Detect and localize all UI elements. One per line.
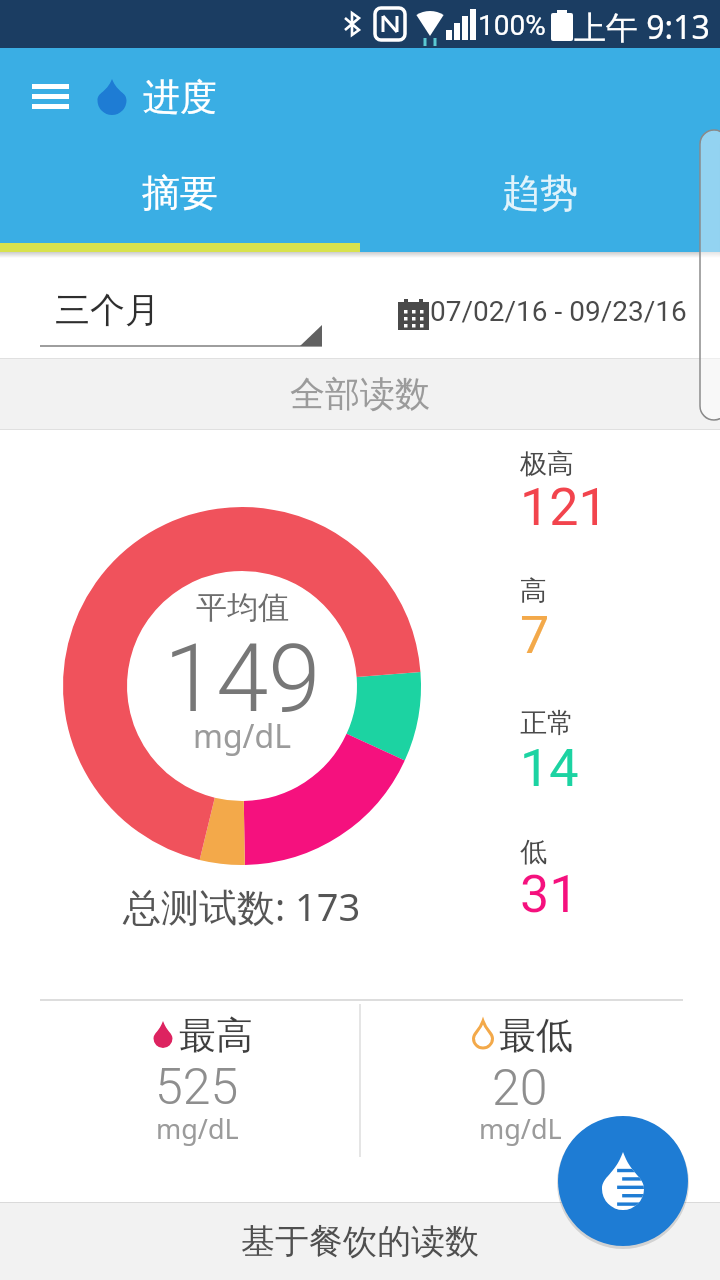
staticText: 极高 — [520, 447, 574, 481]
staticText: 100% — [478, 9, 546, 42]
staticText: 最高 — [179, 1012, 253, 1056]
staticText: 525 — [155, 1058, 239, 1114]
staticText: 基于餐饮的读数 — [241, 1220, 479, 1263]
button[interactable] — [0, 1202, 720, 1280]
button[interactable]: 07/02/16 - 09/23/16 — [430, 288, 692, 334]
button[interactable]: 三个月 — [55, 285, 255, 335]
button[interactable]: 摘要 — [0, 159, 360, 227]
staticText: 31 — [520, 864, 579, 925]
button[interactable] — [558, 1116, 688, 1246]
staticText: 14 — [520, 738, 579, 799]
staticText: 正常 — [520, 706, 574, 740]
staticText: 总测试数: 173 — [123, 880, 361, 932]
staticText: 全部读数 — [290, 372, 430, 416]
staticText: 低 — [520, 835, 547, 869]
staticText: 07/02/16 - 09/23/16 — [430, 295, 687, 328]
staticText: 三个月 — [55, 288, 160, 332]
staticText: 摘要 — [142, 169, 218, 217]
staticText: 进度 — [143, 74, 217, 120]
staticText: mg/dL — [193, 714, 291, 758]
staticText: 121 — [520, 477, 608, 538]
staticText: 7 — [520, 605, 550, 666]
staticText: mg/dL — [156, 1110, 239, 1147]
staticText: 最低 — [499, 1012, 573, 1056]
staticText: 上午 9:13 — [574, 5, 710, 43]
staticText: 平均值 — [196, 588, 289, 627]
button[interactable] — [16, 64, 86, 134]
staticText: 20 — [492, 1059, 548, 1115]
button[interactable] — [0, 358, 720, 430]
staticText: mg/dL — [479, 1110, 562, 1147]
staticText: 趋势 — [502, 169, 578, 217]
button[interactable]: 趋势 — [360, 159, 720, 227]
staticText: 149 — [164, 624, 321, 734]
staticText: 高 — [520, 574, 547, 608]
